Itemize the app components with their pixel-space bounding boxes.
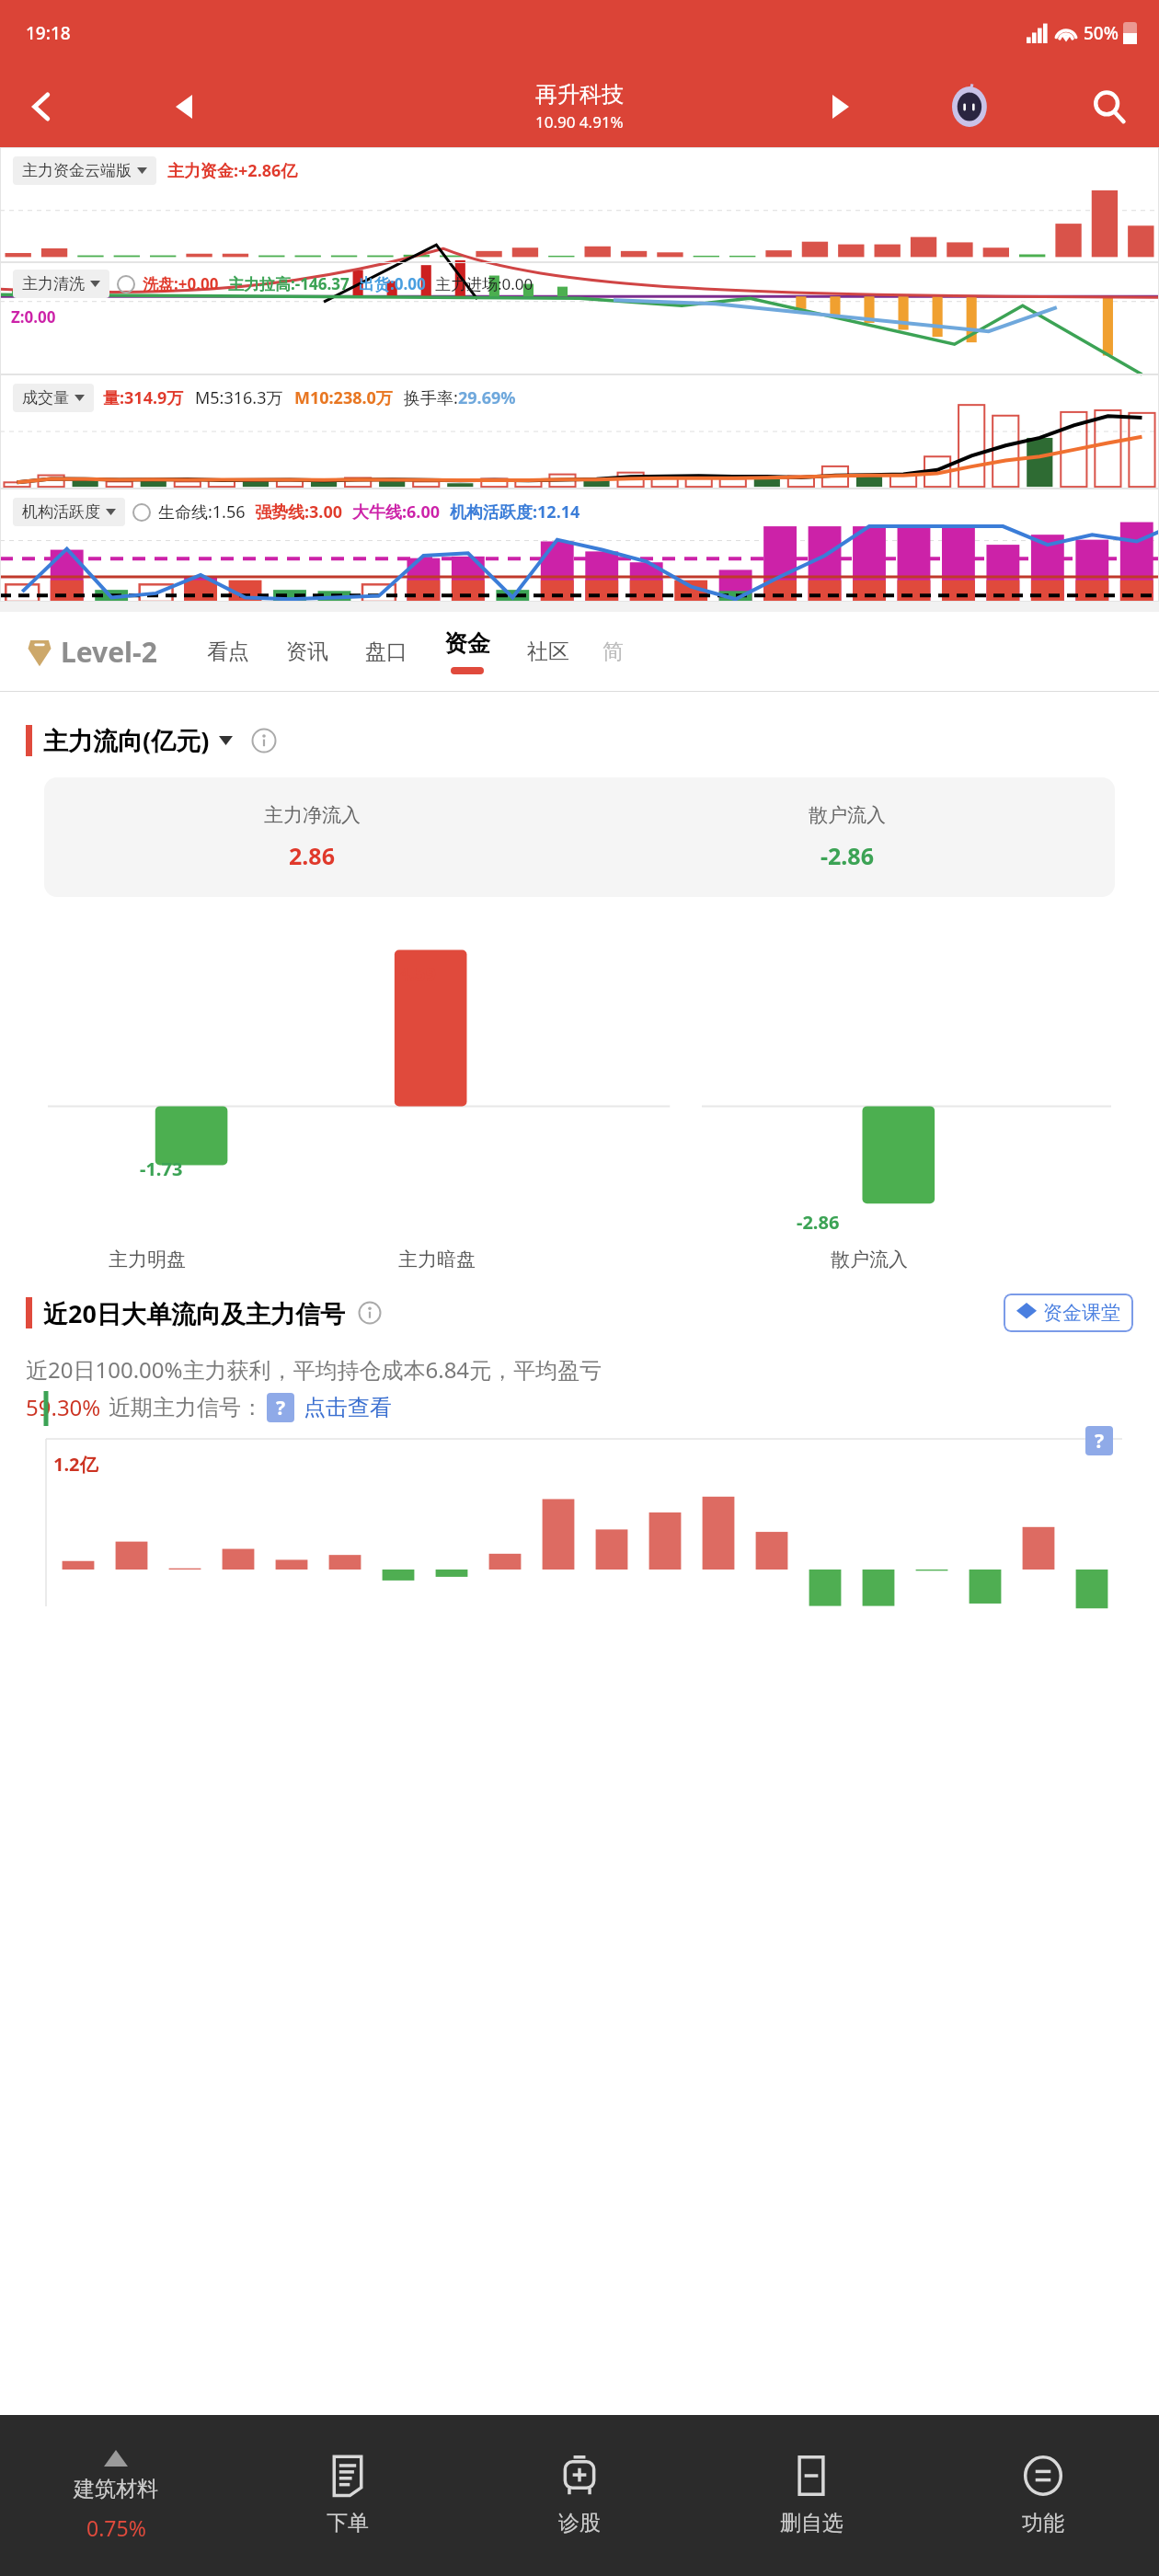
button[interactable]: 看点 — [189, 629, 268, 674]
staticText: 看点 — [207, 638, 249, 665]
button[interactable]: 主力清洗 — [13, 270, 109, 298]
staticText: 主力暗盘 — [294, 1248, 579, 1271]
staticText: 近期主力信号： — [109, 1394, 263, 1421]
button[interactable]: 社区 — [509, 629, 588, 674]
button[interactable]: 删自选 — [695, 2455, 927, 2536]
button[interactable]: 机构活跃度 — [13, 498, 125, 526]
button[interactable]: 主力资金云端版 — [13, 156, 156, 185]
button[interactable]: 功能 — [927, 2455, 1159, 2536]
staticText: 换手率: — [404, 386, 458, 409]
staticText: 主力净流入 — [264, 803, 361, 827]
staticText: -2.86 — [820, 840, 874, 871]
staticText: 下单 — [327, 2510, 369, 2536]
staticText: M5:316.3万 — [195, 386, 283, 409]
staticText: 主力流向(亿元) — [43, 723, 210, 757]
staticText: 强势线:3.00 — [255, 500, 343, 523]
button[interactable]: Next stock — [815, 81, 866, 132]
staticText: 主力明盘 — [0, 1248, 294, 1271]
staticText: 再升科技 — [535, 81, 624, 109]
staticText: 主力资金云端版 — [22, 161, 132, 180]
button[interactable]: Info — [358, 1301, 382, 1325]
staticText: 点击查看 — [304, 1394, 392, 1421]
staticText: -2.86 — [797, 1210, 840, 1235]
staticText: 10.90 4.91% — [535, 111, 624, 132]
button[interactable]: Back — [17, 81, 68, 132]
staticText: ? — [276, 1395, 286, 1421]
staticText: ? — [1095, 1428, 1105, 1455]
staticText: M10:238.0万 — [294, 386, 393, 409]
staticText: 社区 — [527, 638, 569, 665]
button[interactable]: 点击查看 — [304, 1394, 392, 1421]
staticText: 资金课堂 — [1043, 1301, 1120, 1325]
staticText: 主力清洗 — [22, 274, 85, 293]
staticText: 机构活跃度:12.14 — [450, 500, 580, 523]
staticText: 主力进场:0.00 — [435, 273, 534, 294]
staticText: 量:314.9万 — [103, 386, 184, 409]
staticText: 出货:0.00 — [359, 273, 426, 294]
staticText: 0.75% — [86, 2513, 146, 2542]
staticText: 成交量 — [22, 388, 69, 408]
staticText: 简 — [602, 638, 624, 665]
button[interactable]: 资金课堂 — [1004, 1294, 1133, 1332]
staticText: 大牛线:6.00 — [352, 500, 441, 523]
staticText: 主力拉高:-146.37 — [228, 273, 350, 294]
staticText: 1.2亿 — [53, 1452, 98, 1477]
button[interactable]: 成交量 — [13, 384, 94, 412]
button[interactable]: 简 — [588, 629, 624, 674]
staticText: 生命线:1.56 — [158, 500, 246, 523]
staticText: Level-2 — [61, 633, 157, 671]
staticText: 59.30% — [26, 1392, 101, 1422]
button[interactable]: 主力流向(亿元) — [43, 723, 233, 757]
staticText: 近20日大单流向及主力信号 — [43, 1296, 345, 1330]
staticText: 19:18 — [26, 21, 71, 45]
staticText: 诊股 — [558, 2510, 601, 2536]
staticText: 主力资金:+2.86亿 — [167, 159, 298, 182]
staticText: 29.69% — [458, 386, 516, 409]
staticText: 洗盘:+0.00 — [143, 273, 219, 294]
button[interactable]: Level-2 — [28, 633, 157, 671]
staticText: 建筑材料 — [74, 2476, 158, 2502]
staticText: 散户流入 — [809, 803, 886, 827]
button[interactable]: Previous stock — [158, 81, 210, 132]
staticText: 删自选 — [780, 2510, 843, 2536]
button[interactable]: 盘口 — [347, 629, 426, 674]
staticText: 近20日100.00%主力获利，平均持仓成本6.84元，平均盈亏 — [26, 1354, 602, 1385]
staticText: 资讯 — [286, 638, 328, 665]
button[interactable]: 建筑材料 — [0, 2450, 232, 2542]
button[interactable]: AI assistant — [944, 78, 1001, 135]
staticText: 资金 — [444, 629, 490, 658]
staticText: Z:0.00 — [11, 306, 56, 328]
staticText: 盘口 — [365, 638, 407, 665]
button[interactable]: Search — [1080, 77, 1139, 136]
staticText: 散户流入 — [579, 1248, 1159, 1271]
button[interactable]: Info — [251, 728, 277, 753]
staticText: 机构活跃度 — [22, 502, 100, 522]
button[interactable]: 诊股 — [464, 2455, 695, 2536]
staticText: 2.86 — [289, 840, 335, 871]
button[interactable]: 资讯 — [268, 629, 347, 674]
staticText: 50% — [1084, 21, 1119, 45]
button[interactable]: 资金 — [426, 629, 509, 674]
staticText: 功能 — [1022, 2510, 1064, 2536]
staticText: -1.73 — [140, 1156, 183, 1181]
button[interactable]: 下单 — [232, 2455, 464, 2536]
